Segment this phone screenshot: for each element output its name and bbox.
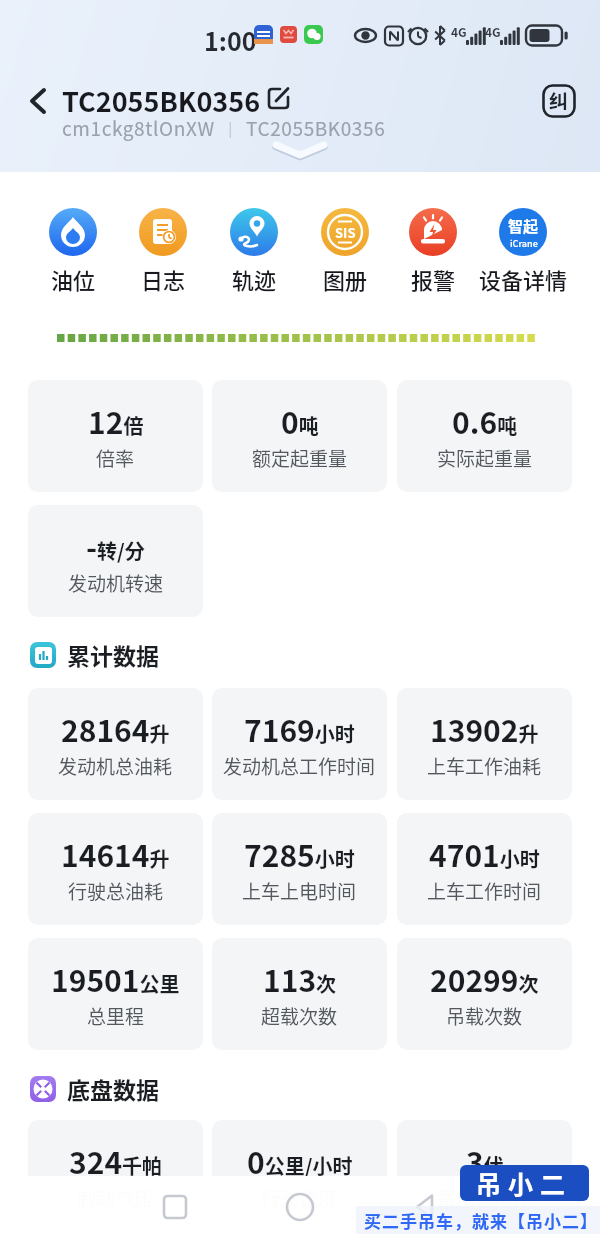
staticText: 纠 [549,87,569,115]
button[interactable]: SIS [300,208,390,295]
staticText: 4701小时 [429,832,540,875]
staticText: 0公里/小时 [247,1139,353,1182]
staticText: 0.6吨 [452,399,518,442]
staticText: 设备详情 [479,263,568,295]
button[interactable]: 19501公里 [28,938,203,1050]
button[interactable]: 14614升 [28,813,203,925]
staticText: 12倍 [88,399,144,442]
button[interactable]: 20299次 [397,938,572,1050]
staticText: 吊小二 [476,1165,573,1201]
staticText: 发动机转速 [68,569,164,597]
staticText: 7285小时 [244,832,355,875]
staticText: 13902升 [430,707,539,750]
staticText: 上车上电时间 [242,877,357,905]
staticText: 19501公里 [51,957,180,1000]
button[interactable]: 纠 [542,84,576,118]
staticText: 7169小时 [244,707,355,750]
staticText: 吊载次数 [446,1002,523,1030]
staticText: 上车工作油耗 [427,752,542,780]
button[interactable]: 113次 [212,938,387,1050]
button[interactable]: 4701小时 [397,813,572,925]
button[interactable]: 0吨 [212,380,387,492]
button[interactable] [285,1192,315,1222]
staticText: 行驶速度 [261,1184,338,1212]
staticText: 上车工作时间 [427,877,542,905]
staticText: 买二手吊车，就来【吊小二】 [364,1208,598,1233]
button[interactable] [160,1192,190,1222]
button[interactable]: 吊小二 [460,1165,589,1201]
staticText: 20299次 [430,957,539,1000]
button[interactable]: 7285小时 [212,813,387,925]
staticText: 14614升 [61,832,170,875]
staticText: iCrane [510,237,538,250]
staticText: 113次 [263,957,337,1000]
staticText: SIS [335,223,356,242]
staticText: 蓄电池电压 [437,1184,533,1212]
staticText: 324千帕 [69,1139,163,1182]
staticText: 额定起重量 [252,444,348,472]
button[interactable]: -转/分 [28,505,203,617]
staticText: 4G [451,23,467,40]
staticText: 轨迹 [232,263,277,295]
button[interactable]: 3伏 [397,1120,572,1232]
staticText: TC2055BK0356 [246,114,386,142]
staticText: 3伏 [466,1139,504,1182]
staticText: 总里程 [87,1002,145,1030]
staticText: 发动机总工作时间 [223,752,376,780]
staticText: 智起 [508,215,539,237]
button[interactable]: 累计数据 [30,638,159,671]
staticText: 图册 [323,263,368,295]
staticText: 行驶总油耗 [68,877,164,905]
button[interactable]: 324千帕 [28,1120,203,1232]
staticText: 0吨 [281,399,319,442]
staticText: 1:00 [204,22,257,58]
button[interactable]: 买二手吊车，就来【吊小二】 [356,1206,600,1234]
staticText: 28164升 [61,707,170,750]
button[interactable]: 12倍 [28,380,203,492]
button[interactable]: 13902升 [397,688,572,800]
button[interactable] [272,142,328,162]
staticText: -转/分 [86,524,145,567]
button[interactable]: 0.6吨 [397,380,572,492]
button[interactable]: 底盘数据 [30,1072,159,1105]
staticText: 实际起重量 [437,444,533,472]
button[interactable]: 智起 [478,208,568,295]
button[interactable]: 报警 [388,208,478,295]
staticText: 4G [485,23,501,40]
staticText: 发动机总油耗 [58,752,173,780]
staticText: 报警 [411,263,456,295]
staticText: cm1ckg8tlOnXW [62,114,215,142]
staticText: 底盘数据 [67,1072,159,1105]
button[interactable]: 7169小时 [212,688,387,800]
staticText: TC2055BK0356 [62,81,261,120]
button[interactable]: 日志 [118,208,208,295]
staticText: 倍率 [96,444,135,472]
button[interactable]: 轨迹 [209,208,299,295]
staticText: 超载次数 [261,1002,338,1030]
staticText: ｜ [215,117,246,140]
staticText: 累计数据 [67,638,159,671]
staticText: 日志 [141,263,186,295]
button[interactable] [28,88,48,114]
button[interactable]: 28164升 [28,688,203,800]
staticText: 油位 [51,263,96,295]
button[interactable] [266,85,292,111]
button[interactable]: 0公里/小时 [212,1120,387,1232]
button[interactable] [410,1192,440,1222]
button[interactable]: 油位 [28,208,118,295]
